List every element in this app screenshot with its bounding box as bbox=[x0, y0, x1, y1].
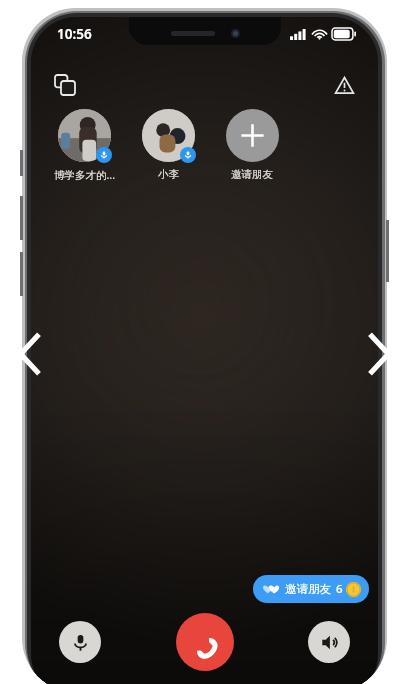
button[interactable]: Warning bbox=[324, 65, 364, 105]
button[interactable]: End call bbox=[176, 613, 234, 671]
button[interactable]: 邀请朋友 bbox=[221, 109, 283, 181]
staticText: 邀请朋友 bbox=[231, 168, 273, 181]
button[interactable]: 邀请朋友 bbox=[253, 575, 369, 603]
button[interactable]: 小李 bbox=[137, 109, 199, 181]
staticText: 6 bbox=[336, 581, 343, 597]
staticText: 小李 bbox=[158, 168, 179, 181]
button[interactable]: 博学多才的... bbox=[53, 109, 115, 182]
staticText: 10:56 bbox=[57, 25, 92, 43]
button[interactable]: Minimize bbox=[45, 65, 85, 105]
button[interactable]: Mute microphone bbox=[59, 621, 101, 663]
staticText: 博学多才的... bbox=[54, 168, 115, 182]
staticText: 邀请朋友 bbox=[285, 582, 331, 596]
button[interactable]: Speaker bbox=[308, 621, 350, 663]
button[interactable]: Next bbox=[361, 328, 397, 380]
button[interactable]: Previous bbox=[12, 328, 48, 380]
